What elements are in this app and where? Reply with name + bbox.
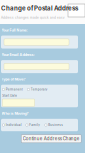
- staticText: Type of Move?: [1, 77, 25, 81]
- button[interactable]: Individual: [2, 123, 22, 127]
- staticText: Family: [29, 123, 40, 127]
- staticText: Start Date: [2, 94, 17, 97]
- staticText: Change of Postal Address: [1, 4, 78, 12]
- button[interactable]: Continue Address Change: [21, 134, 81, 143]
- staticText: Your Email Address:: [1, 53, 34, 57]
- staticText: Your Full Name:: [1, 28, 27, 32]
- button[interactable]: Temporary: [27, 88, 48, 91]
- staticText: Individual: [6, 123, 22, 127]
- button[interactable]: Permanent: [2, 88, 23, 91]
- button[interactable]: Business: [45, 123, 63, 127]
- staticText: Business: [48, 123, 63, 127]
- button[interactable]: Family: [26, 123, 40, 127]
- staticText: Continue Address Change: [23, 136, 80, 141]
- staticText: Address changes made quick and easy: [1, 16, 65, 19]
- staticText: Who is Moving?: [1, 111, 28, 116]
- staticText: Permanent: [6, 88, 23, 91]
- staticText: Temporary: [31, 88, 48, 91]
